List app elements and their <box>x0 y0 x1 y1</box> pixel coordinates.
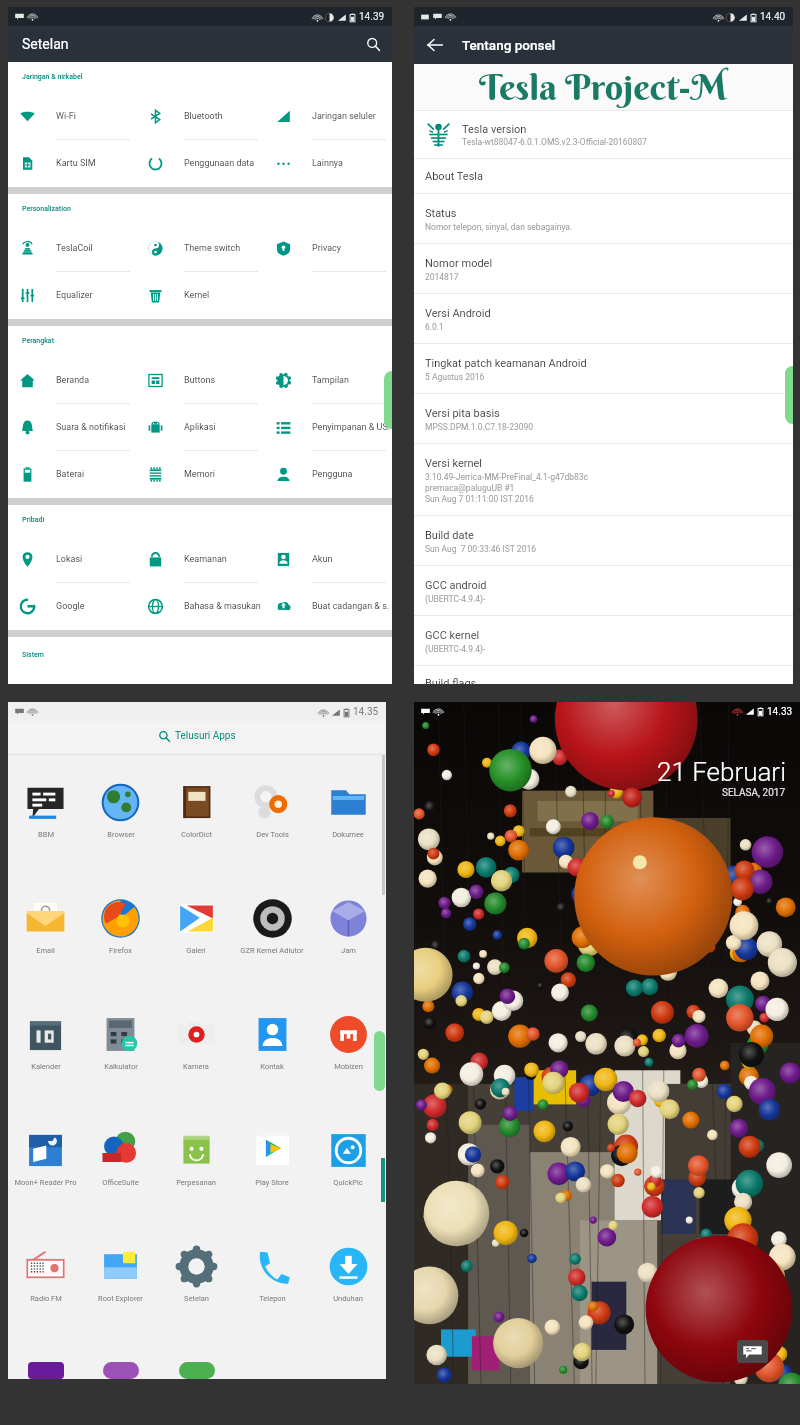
staticText: Telusuri Apps <box>175 730 236 742</box>
button[interactable]: Radio FM <box>8 1228 83 1344</box>
button[interactable]: Perpesanan <box>158 1112 234 1228</box>
button[interactable]: Jaringan seluler <box>264 93 392 140</box>
staticText: Jaringan seluler <box>312 111 376 122</box>
staticText: Dev Tools <box>256 830 289 839</box>
button[interactable]: Keamanan <box>136 536 264 583</box>
button[interactable]: Play Store <box>234 1112 310 1228</box>
button[interactable]: Moon+ Reader Pro <box>8 1112 83 1228</box>
staticText: Firefox <box>109 946 132 955</box>
staticText: Aplikasi <box>184 422 216 433</box>
button[interactable]: Kamera <box>158 996 234 1112</box>
staticText: Sun Aug 7 00:33:46 IST 2016 <box>425 544 536 554</box>
button[interactable]: Kalender <box>8 996 83 1112</box>
button[interactable]: TeslaCoil <box>8 225 136 272</box>
button[interactable]: Versi kernel <box>414 444 793 516</box>
button[interactable]: Firefox <box>83 880 158 996</box>
staticText: Versi pita basis <box>425 407 500 420</box>
staticText: Play Store <box>255 1178 289 1187</box>
staticText: Bluetooth <box>184 111 223 122</box>
button[interactable]: Theme switch <box>136 225 264 272</box>
button[interactable]: Mobizen <box>310 996 386 1112</box>
button[interactable]: Equalizer <box>8 272 136 319</box>
button[interactable]: Kernel <box>136 272 264 319</box>
button[interactable]: Lainnya <box>264 140 392 187</box>
button[interactable]: Dokumee <box>310 764 386 880</box>
button[interactable]: BBM notification <box>737 1340 768 1363</box>
button[interactable]: Search <box>359 30 387 58</box>
button[interactable]: About Tesla <box>414 159 793 194</box>
button[interactable]: Lokasi <box>8 536 136 583</box>
button[interactable]: Bluetooth <box>136 93 264 140</box>
button[interactable]: Root Explorer <box>83 1228 158 1344</box>
staticText: Theme switch <box>184 243 241 254</box>
staticText: Perangkat <box>22 337 54 345</box>
staticText: QuickPic <box>333 1178 363 1187</box>
staticText: Tesla version <box>462 123 527 136</box>
staticText: 5 Agustus 2016 <box>425 372 485 382</box>
button[interactable]: Tesla version <box>414 111 793 159</box>
button[interactable]: Dev Tools <box>234 764 310 880</box>
button[interactable]: GCC kernel <box>414 616 793 666</box>
staticText: TeslaCoil <box>56 243 93 254</box>
staticText: Mobizen <box>334 1062 363 1071</box>
button[interactable]: ColorDict <box>158 764 234 880</box>
button[interactable]: GZR Kernel Adiutor <box>234 880 310 996</box>
staticText: BBM <box>38 830 54 839</box>
button[interactable]: Unduhan <box>310 1228 386 1344</box>
button[interactable]: Versi Android <box>414 294 793 344</box>
staticText: Penyimpanan & US. <box>312 422 391 433</box>
button[interactable]: Kartu SIM <box>8 140 136 187</box>
staticText: 3.10.49-Jerrica-MM-PreFinal_4.1-g47db83c… <box>425 472 589 504</box>
staticText: Jaringan & nirkabel <box>22 73 83 81</box>
button[interactable]: Baterai <box>8 451 136 498</box>
staticText: Suara & notifikasi <box>56 422 126 433</box>
staticText: Google <box>56 601 85 612</box>
button[interactable]: Kontak <box>234 996 310 1112</box>
staticText: Radio FM <box>30 1294 62 1303</box>
button[interactable]: Beranda <box>8 357 136 404</box>
staticText: Build date <box>425 529 474 542</box>
button[interactable]: Browser <box>83 764 158 880</box>
button[interactable]: Jam <box>310 880 386 996</box>
staticText: MPSS.DPM.1.0.C7.18-23090 <box>425 422 534 432</box>
button[interactable]: Bahasa & masukan <box>136 583 264 630</box>
button[interactable]: Back <box>420 30 450 60</box>
staticText: Root Explorer <box>98 1294 143 1303</box>
button[interactable]: Build flags <box>414 666 793 684</box>
button[interactable]: Nomor model <box>414 244 793 294</box>
staticText: Galeri <box>186 946 206 955</box>
button[interactable]: Telepon <box>234 1228 310 1344</box>
button[interactable]: Google <box>8 583 136 630</box>
button[interactable]: Build date <box>414 516 793 566</box>
staticText: Kalkulator <box>104 1062 138 1071</box>
button[interactable]: Email <box>8 880 83 996</box>
button[interactable]: Kalkulator <box>83 996 158 1112</box>
staticText: Penggunaan data <box>184 158 255 169</box>
staticText: Jam <box>341 946 356 955</box>
button[interactable]: Penggunaan data <box>136 140 264 187</box>
button[interactable]: Versi pita basis <box>414 394 793 444</box>
button[interactable]: Privacy <box>264 225 392 272</box>
button[interactable]: Aplikasi <box>136 404 264 451</box>
button[interactable]: Telusuri Apps <box>159 730 236 742</box>
button[interactable]: Wi-Fi <box>8 93 136 140</box>
button[interactable]: Tampilan <box>264 357 392 404</box>
button[interactable]: Setelan <box>158 1228 234 1344</box>
button[interactable]: Pengguna <box>264 451 392 498</box>
button[interactable]: Suara & notifikasi <box>8 404 136 451</box>
staticText: Lokasi <box>56 554 83 565</box>
button[interactable]: Penyimpanan & US. <box>264 404 392 451</box>
button[interactable]: GCC android <box>414 566 793 616</box>
staticText: 6.0.1 <box>425 322 444 332</box>
button[interactable]: Tingkat patch keamanan Android <box>414 344 793 394</box>
button[interactable]: Status <box>414 194 793 244</box>
button[interactable]: BBM <box>8 764 83 880</box>
button[interactable]: QuickPic <box>310 1112 386 1228</box>
button[interactable]: Akun <box>264 536 392 583</box>
button[interactable]: Buttons <box>136 357 264 404</box>
button[interactable]: Buat cadangan & s. <box>264 583 392 630</box>
button[interactable]: OfficeSuite <box>83 1112 158 1228</box>
staticText: Beranda <box>56 375 90 386</box>
button[interactable]: Galeri <box>158 880 234 996</box>
button[interactable]: Memori <box>136 451 264 498</box>
